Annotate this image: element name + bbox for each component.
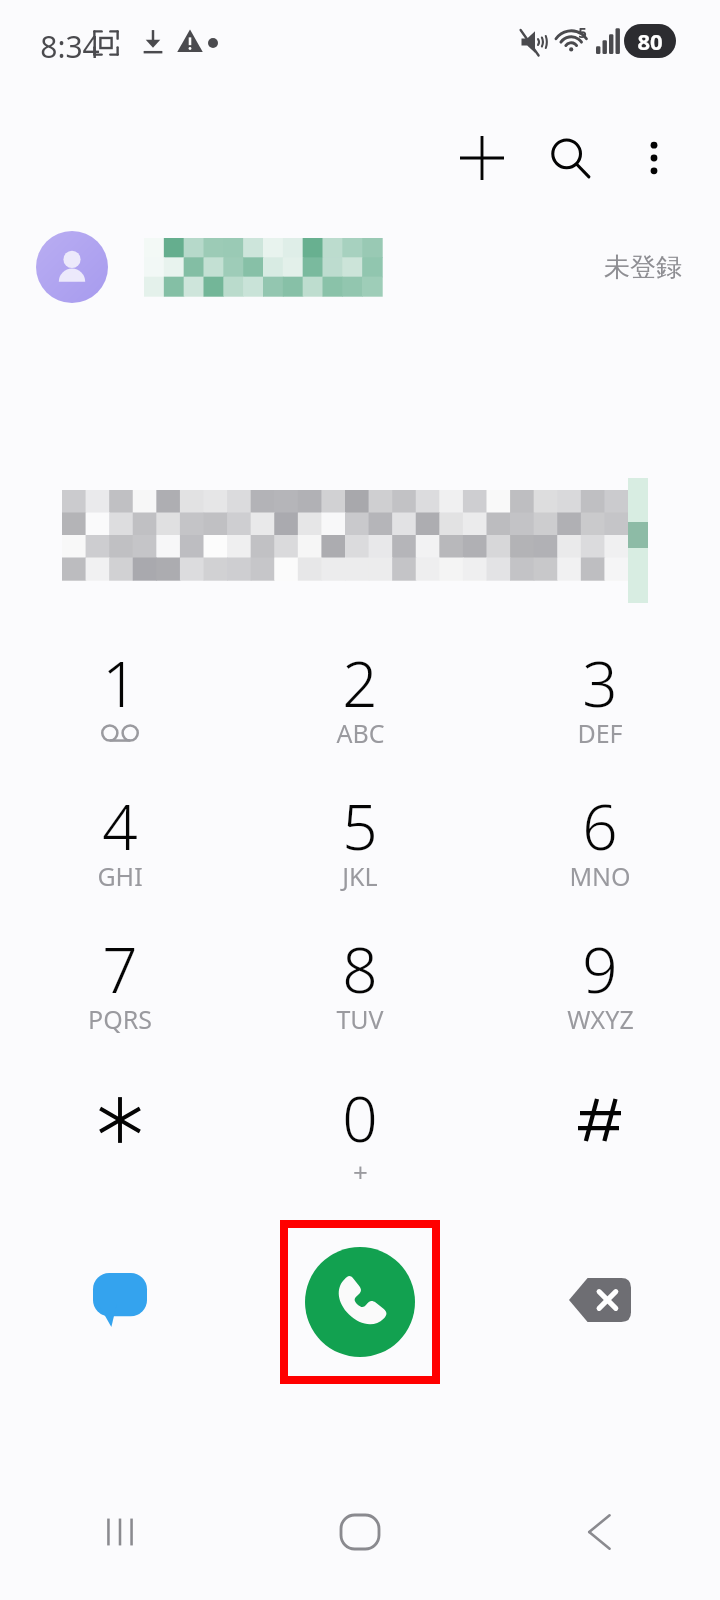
- button[interactable]: 5: [240, 768, 480, 911]
- staticText: 8:34: [40, 26, 100, 67]
- staticText: 3: [582, 641, 618, 725]
- staticText: PQRS: [88, 1002, 152, 1036]
- staticText: GHI: [97, 859, 143, 893]
- button[interactable]: 未登録: [0, 212, 720, 322]
- button[interactable]: More options: [614, 118, 694, 198]
- staticText: 未登録: [604, 251, 682, 284]
- button[interactable]: Recent apps: [0, 1484, 240, 1580]
- button[interactable]: [480, 1054, 720, 1197]
- staticText: 7: [102, 927, 138, 1011]
- button[interactable]: 1: [0, 625, 240, 768]
- staticText: 9: [582, 927, 618, 1011]
- button[interactable]: Add contact: [438, 114, 526, 202]
- button[interactable]: 9: [480, 911, 720, 1054]
- staticText: 4: [102, 784, 138, 868]
- staticText: 6: [582, 784, 618, 868]
- staticText: 0: [342, 1076, 378, 1160]
- staticText: 2: [342, 641, 378, 725]
- staticText: DEF: [577, 716, 623, 750]
- button[interactable]: Call: [305, 1247, 415, 1357]
- staticText: 5: [342, 784, 378, 868]
- button[interactable]: 8: [240, 911, 480, 1054]
- button[interactable]: 7: [0, 911, 240, 1054]
- staticText: 5: [578, 22, 587, 42]
- button[interactable]: Home: [240, 1484, 480, 1580]
- button[interactable]: 6: [480, 768, 720, 911]
- staticText: ABC: [336, 716, 385, 750]
- button[interactable]: Backspace: [480, 1200, 720, 1400]
- button[interactable]: 3: [480, 625, 720, 768]
- staticText: +: [353, 1154, 368, 1189]
- button[interactable]: 0: [240, 1054, 480, 1197]
- button[interactable]: 2: [240, 625, 480, 768]
- button[interactable]: 4: [0, 768, 240, 911]
- staticText: TUV: [336, 1002, 384, 1036]
- staticText: 8: [342, 927, 378, 1011]
- staticText: 80: [637, 26, 663, 56]
- button[interactable]: Send message: [0, 1200, 240, 1400]
- staticText: MNO: [569, 859, 631, 893]
- button[interactable]: Back: [480, 1484, 720, 1580]
- button[interactable]: [0, 1054, 240, 1197]
- staticText: JKL: [342, 859, 378, 893]
- staticText: WXYZ: [567, 1002, 634, 1036]
- staticText: 1: [102, 641, 138, 725]
- button[interactable]: Search: [526, 114, 614, 202]
